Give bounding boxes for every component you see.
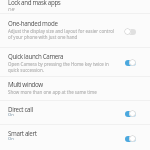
staticText: Adjust the display size and layout for e… (8, 28, 115, 40)
button[interactable]: Quick launch Camera, on (122, 56, 138, 68)
staticText: Multi window (8, 80, 43, 88)
staticText: On (8, 136, 14, 142)
button[interactable]: Direct call, on (122, 107, 138, 119)
staticText: Show more than one app at the same time (8, 89, 128, 95)
staticText: Direct call (8, 105, 33, 113)
button[interactable]: One-handed mode (0, 14, 150, 47)
button[interactable]: Smart alert, on (122, 132, 138, 144)
button[interactable]: Direct call (0, 101, 150, 124)
button[interactable]: Multi window (0, 77, 150, 100)
staticText: Off (8, 7, 15, 11)
button[interactable]: Quick launch Camera (0, 48, 150, 76)
button[interactable]: Lock and mask apps (0, 0, 150, 13)
staticText: Lock and mask apps (8, 0, 61, 6)
staticText: Smart alert (8, 129, 37, 137)
staticText: Quick launch Camera (8, 52, 64, 60)
staticText: One-handed mode (8, 19, 58, 27)
button[interactable]: One-handed mode, off (122, 25, 138, 37)
button[interactable]: Smart alert (0, 125, 150, 150)
staticText: On (8, 112, 14, 118)
staticText: Open Camera by pressing the Home key twi… (8, 61, 115, 73)
